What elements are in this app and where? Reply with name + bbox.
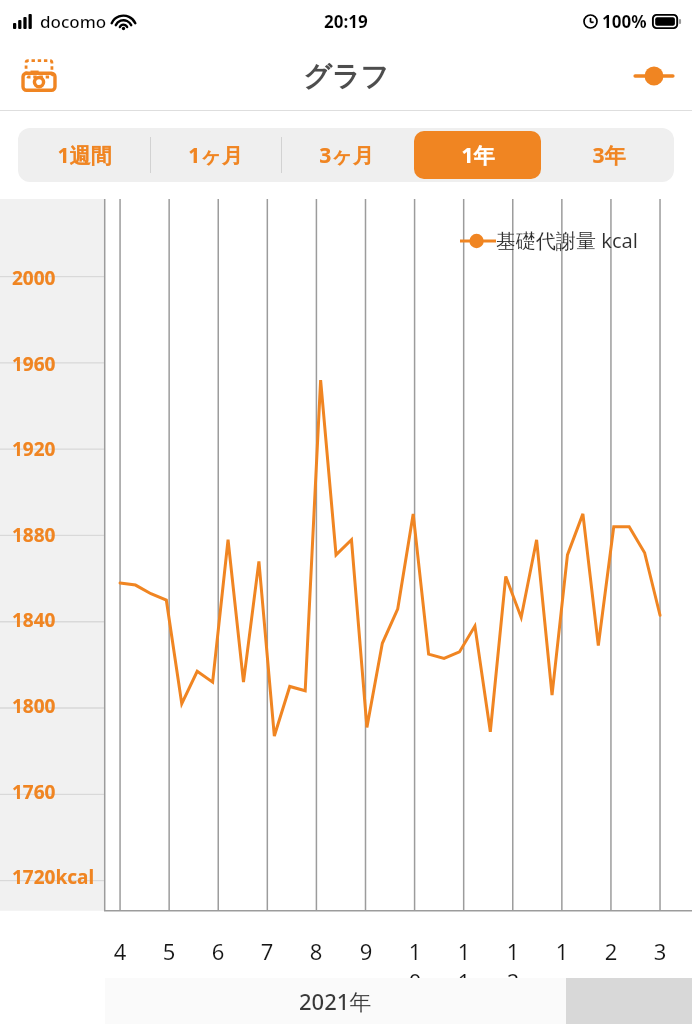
button[interactable]: 1週間 [18,128,150,182]
staticText: グラフ [303,59,389,94]
staticText: 1800 [12,693,56,719]
staticText: 1週間 [57,141,112,170]
staticText: 1880 [12,522,56,548]
staticText: 20:19 [324,10,368,33]
staticText: 2021年 [299,986,372,1016]
staticText: 10 [403,936,427,982]
button[interactable]: 3年 [543,128,674,182]
staticText: 1720kcal [12,864,95,890]
staticText: 11 [452,936,476,982]
staticText: 1920 [12,436,56,462]
staticText: 8 [304,936,328,966]
staticText: 7 [255,936,279,966]
staticText: 12 [501,936,525,982]
staticText: 1年 [461,141,495,170]
staticText: 4 [108,936,132,966]
staticText: 基礎代謝量 kcal [496,227,638,254]
button[interactable]: Screenshot [12,49,66,103]
staticText: 1 [550,936,574,966]
staticText: 6 [206,936,230,966]
button[interactable]: Settings [626,51,682,101]
staticText: 3年 [592,141,626,170]
staticText: 5 [157,936,181,966]
staticText: 1ヶ月 [188,141,243,170]
staticText: 9 [354,936,378,966]
button[interactable]: 3ヶ月 [281,128,412,182]
button[interactable]: 1ヶ月 [150,128,281,182]
staticText: 3ヶ月 [319,141,374,170]
button[interactable]: 2021年 [105,978,692,1024]
staticText: 2000 [12,265,56,291]
staticText: 2 [599,936,623,966]
staticText: docomo [40,10,107,33]
staticText: 100% [602,10,647,33]
staticText: 3 [648,936,672,966]
staticText: 1760 [12,779,56,805]
button[interactable]: 1年 [412,128,543,182]
staticText: 1960 [12,351,56,377]
staticText: 1840 [12,607,56,633]
